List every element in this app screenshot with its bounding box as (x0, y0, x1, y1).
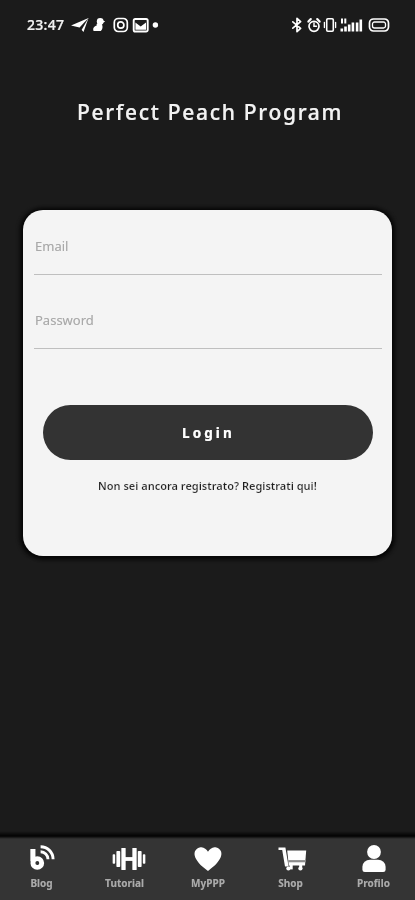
button[interactable]: Shop (249, 836, 332, 900)
staticText: 23:47 (27, 15, 65, 34)
button[interactable]: MyPPP (166, 836, 249, 900)
staticText: Email (35, 237, 69, 255)
button[interactable]: Tutorial (83, 836, 166, 900)
staticText: Non sei ancora registrato? Registrati qu… (98, 478, 317, 493)
staticText: Login (182, 424, 235, 442)
button[interactable]: Non sei ancora registrato? Registrati qu… (23, 478, 392, 493)
staticText: Profilo (357, 876, 390, 890)
button[interactable]: Profilo (332, 836, 415, 900)
button[interactable]: Login (43, 405, 373, 460)
button[interactable]: Blog (0, 836, 83, 900)
staticText: Tutorial (105, 876, 144, 890)
staticText: Perfect Peach Program (77, 98, 344, 127)
staticText: MyPPP (191, 876, 225, 890)
staticText: Blog (30, 876, 53, 890)
staticText: Password (35, 311, 94, 329)
staticText: Shop (278, 876, 303, 890)
